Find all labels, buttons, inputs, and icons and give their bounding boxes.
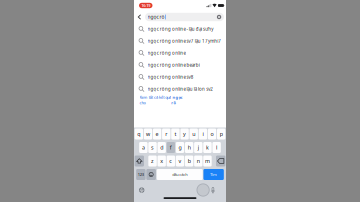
- staticText: l: [216, 144, 217, 151]
- button[interactable]: ngọc rồng online - lậu đại sưhy: [134, 23, 226, 35]
- staticText: ngọc rồng online lậu lã lon sv2: [147, 86, 213, 92]
- button[interactable]: ngọc rồng online lậu lã lon sv2: [134, 83, 226, 95]
- staticText: u: [192, 130, 195, 138]
- staticText: ngọc rồng online - lậu đại sưhy: [147, 26, 213, 32]
- staticText: e: [156, 130, 159, 138]
- staticText: y: [183, 130, 186, 138]
- button[interactable]: Tìm: [203, 169, 224, 180]
- staticText: r: [165, 130, 167, 138]
- button[interactable]: Back: [134, 12, 145, 22]
- button[interactable]: u: [189, 128, 198, 139]
- staticText: j: [198, 144, 199, 151]
- button[interactable]: ngọc rồng online sv7 lậu 17ymhi7: [134, 35, 226, 47]
- button[interactable]: t: [171, 128, 180, 139]
- button[interactable]: g: [176, 142, 184, 153]
- staticText: q: [137, 130, 140, 138]
- staticText: n: [197, 157, 200, 165]
- staticText: m: [205, 157, 210, 165]
- button[interactable]: Dictation: [211, 187, 215, 193]
- staticText: ngọc rồng online sv8: [147, 74, 194, 80]
- button[interactable]: i: [199, 128, 207, 139]
- button[interactable]: ngọc rồng online bearbi: [134, 59, 226, 71]
- staticText: Tìm: [210, 172, 217, 177]
- button[interactable]: ngọc rồng online: [134, 47, 226, 59]
- staticText: x: [160, 157, 163, 165]
- staticText: f: [170, 144, 172, 151]
- button[interactable]: n: [194, 155, 202, 166]
- button[interactable]: a: [139, 142, 148, 153]
- staticText: v: [178, 157, 181, 165]
- staticText: z: [151, 157, 154, 165]
- staticText: ngọc rồ: [171, 95, 182, 105]
- button[interactable]: f: [167, 142, 175, 153]
- button[interactable]: s: [148, 142, 157, 153]
- button[interactable]: m: [203, 155, 212, 166]
- staticText: g: [178, 144, 181, 151]
- staticText: Xem tất cả kết quả cho: [139, 95, 171, 105]
- button[interactable]: y: [180, 128, 189, 139]
- staticText: d: [160, 144, 163, 151]
- button[interactable]: r: [162, 128, 170, 139]
- button[interactable]: w: [144, 128, 152, 139]
- staticText: dấu cách: [172, 172, 187, 177]
- button[interactable]: Clear search text: [215, 13, 223, 21]
- staticText: t: [174, 130, 176, 138]
- button[interactable]: o: [208, 128, 216, 139]
- button[interactable]: q: [135, 128, 143, 139]
- staticText: 16:19: [141, 3, 150, 8]
- button[interactable]: Switch keyboard: [139, 187, 144, 193]
- button[interactable]: e: [153, 128, 161, 139]
- button[interactable]: h: [185, 142, 193, 153]
- staticText: a: [142, 144, 145, 151]
- staticText: b: [188, 157, 191, 165]
- staticText: p: [220, 130, 223, 138]
- staticText: 123: [138, 172, 144, 177]
- button[interactable]: dấu cách: [157, 169, 203, 180]
- button[interactable]: v: [176, 155, 184, 166]
- staticText: w: [146, 130, 150, 138]
- button[interactable]: b: [185, 155, 193, 166]
- button[interactable]: Emoji: [146, 169, 156, 180]
- button[interactable]: Delete: [216, 155, 225, 166]
- staticText: ngọc rồng online sv7 lậu 17ymhi7: [147, 38, 221, 44]
- staticText: h: [188, 144, 191, 151]
- staticText: ngọc rồng online bearbi: [147, 62, 200, 68]
- button[interactable]: ngọc rồng online sv8: [134, 71, 226, 83]
- button[interactable]: Shift: [135, 155, 144, 166]
- button[interactable]: p: [217, 128, 225, 139]
- button[interactable]: z: [148, 155, 157, 166]
- button[interactable]: 123: [136, 169, 146, 180]
- button[interactable]: Cursor control: [196, 183, 210, 197]
- button[interactable]: x: [157, 155, 166, 166]
- button[interactable]: d: [157, 142, 166, 153]
- staticText: ngọc rồ: [148, 14, 165, 20]
- button[interactable]: Xem tất cả kết quả cho: [134, 95, 226, 105]
- staticText: c: [169, 157, 172, 165]
- staticText: ngọc rồng online: [147, 50, 185, 56]
- staticText: k: [206, 144, 209, 151]
- staticText: o: [210, 130, 213, 138]
- button[interactable]: c: [167, 155, 175, 166]
- button[interactable]: l: [212, 142, 221, 153]
- button[interactable]: j: [194, 142, 202, 153]
- staticText: i: [202, 130, 203, 138]
- button[interactable]: k: [203, 142, 212, 153]
- staticText: s: [151, 144, 154, 151]
